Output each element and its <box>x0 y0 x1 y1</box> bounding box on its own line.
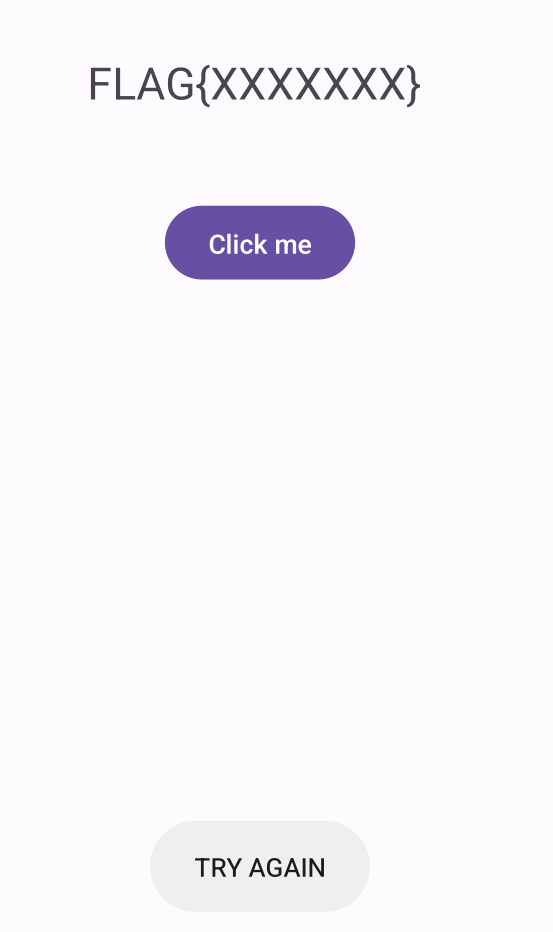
staticText: FLAG{XXXXXXX} <box>87 58 421 110</box>
button[interactable]: TRY AGAIN <box>150 821 370 912</box>
button[interactable]: Click me <box>165 206 355 279</box>
staticText: Click me <box>208 229 311 260</box>
staticText: TRY AGAIN <box>194 853 325 883</box>
